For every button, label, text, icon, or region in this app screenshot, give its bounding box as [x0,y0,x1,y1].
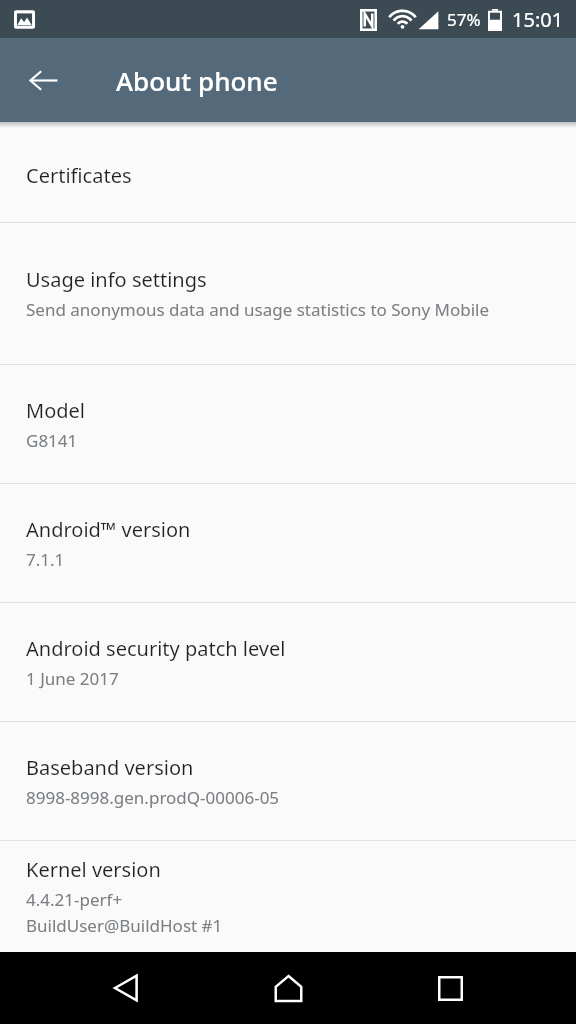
button[interactable]: Android™ version [0,484,576,602]
staticText: 7.1.1 [26,548,65,571]
staticText: Baseband version [26,754,194,781]
button[interactable]: Kernel version [0,841,576,952]
staticText: 15:01 [512,6,564,33]
staticText: 57% [447,8,481,31]
button[interactable]: Certificates [0,122,576,222]
staticText: Kernel version [26,856,161,883]
staticText: Send anonymous data and usage statistics… [26,298,490,321]
button[interactable]: Baseband version [0,722,576,840]
button[interactable]: Model [0,365,576,483]
button[interactable]: Recent apps [415,953,485,1023]
staticText: G8141 [26,429,78,452]
button[interactable]: Back [92,953,162,1023]
staticText: Android security patch level [26,635,286,662]
staticText: 8998-8998.gen.prodQ-00006-05 [26,786,280,809]
button[interactable]: Navigate up [14,51,72,109]
staticText: Certificates [26,162,132,189]
staticText: 4.4.21-perf+ BuildUser@BuildHost #1 [26,888,223,937]
staticText: Model [26,397,85,424]
button[interactable]: Home [253,953,323,1023]
staticText: 1 June 2017 [26,667,119,690]
staticText: About phone [116,63,278,98]
staticText: Android™ version [26,516,191,543]
staticText: Usage info settings [26,266,207,293]
button[interactable]: Usage info settings [0,223,576,364]
button[interactable]: Android security patch level [0,603,576,721]
